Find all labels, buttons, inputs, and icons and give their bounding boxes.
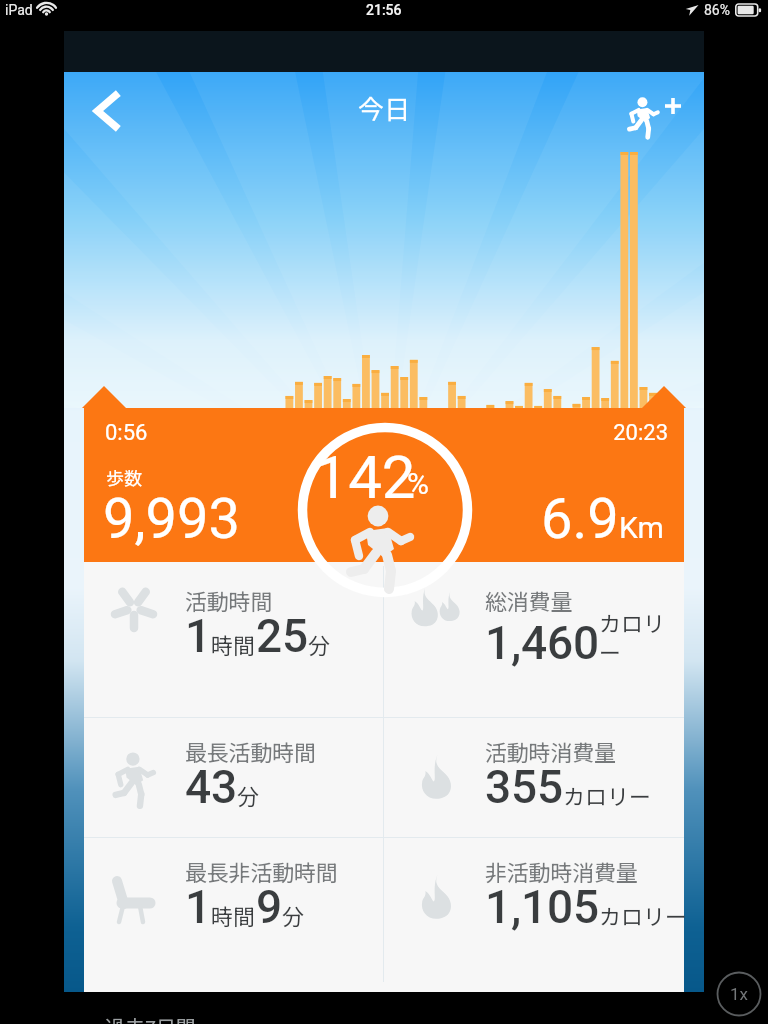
staticText: カロリー bbox=[563, 779, 652, 811]
staticText: 1,105 bbox=[485, 880, 599, 934]
staticText: 9 bbox=[256, 880, 282, 934]
button[interactable]: Add activity bbox=[616, 83, 688, 153]
staticText: 43 bbox=[185, 760, 237, 814]
button[interactable]: 総消費量 bbox=[384, 562, 684, 717]
staticText: Km bbox=[619, 510, 664, 545]
staticText: 20:23 bbox=[68, 420, 668, 446]
staticText: 今日 bbox=[64, 89, 704, 127]
staticText: 総消費量 bbox=[485, 584, 573, 616]
staticText: 1 bbox=[185, 609, 211, 663]
staticText: 最長活動時間 bbox=[185, 735, 316, 767]
staticText: % bbox=[407, 466, 429, 501]
button[interactable]: 活動時消費量 bbox=[384, 718, 684, 837]
staticText: 過去7日間 bbox=[105, 1012, 197, 1024]
button[interactable]: 最長非活動時間 bbox=[84, 838, 384, 957]
staticText: 142 bbox=[275, 442, 455, 512]
staticText: 時間 bbox=[211, 899, 256, 931]
staticText: 355 bbox=[485, 760, 563, 814]
staticText: 活動時間 bbox=[185, 584, 273, 616]
button[interactable]: Zoom 1x bbox=[716, 971, 762, 1017]
staticText: 1,460 bbox=[485, 616, 599, 670]
staticText: 非活動時消費量 bbox=[485, 855, 638, 887]
staticText: 分 bbox=[308, 628, 331, 660]
staticText: 86% bbox=[704, 2, 730, 18]
staticText: カロリー bbox=[599, 606, 681, 667]
staticText: 6.9 bbox=[541, 486, 619, 552]
staticText: 最長非活動時間 bbox=[185, 855, 338, 887]
button[interactable]: 活動時間 bbox=[84, 562, 384, 717]
staticText: 25 bbox=[256, 609, 308, 663]
staticText: 1x bbox=[730, 984, 748, 1004]
staticText: 9,993 bbox=[103, 486, 240, 552]
staticText: カロリー bbox=[599, 899, 688, 931]
button[interactable]: Back bbox=[74, 79, 138, 143]
staticText: 0:56 bbox=[105, 420, 148, 446]
button[interactable]: 非活動時消費量 bbox=[384, 838, 684, 957]
staticText: 1 bbox=[185, 880, 211, 934]
staticText: 分 bbox=[237, 779, 260, 811]
staticText: 分 bbox=[282, 899, 305, 931]
staticText: iPad bbox=[5, 2, 33, 18]
staticText: 活動時消費量 bbox=[485, 735, 616, 767]
staticText: 21:56 bbox=[366, 2, 402, 18]
staticText: 歩数 bbox=[106, 464, 142, 490]
staticText: 時間 bbox=[211, 628, 256, 660]
button[interactable]: 最長活動時間 bbox=[84, 718, 384, 837]
